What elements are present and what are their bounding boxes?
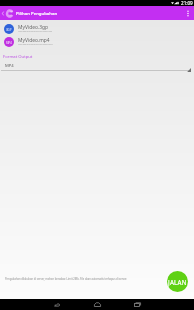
button[interactable]: Navigate up: [0, 6, 6, 20]
button[interactable]: Home: [90, 299, 104, 310]
staticText: 3GP: [6, 28, 12, 32]
staticText: MyVideo.3gp: [18, 24, 48, 31]
staticText: JALAN: [168, 278, 187, 286]
button[interactable]: JALAN: [167, 271, 188, 292]
button[interactable]: MP4: [1, 63, 191, 73]
button[interactable]: 3GP: [0, 22, 194, 35]
staticText: MyVideo.mp4: [18, 37, 50, 44]
staticText: Pengubahan dilakukan di server, mohon be…: [5, 277, 127, 281]
button[interactable]: Back: [50, 299, 64, 310]
staticText: Pilihan Pengubahan: [16, 10, 58, 16]
button[interactable]: More options: [181, 6, 194, 20]
button[interactable]: Recent apps: [130, 299, 144, 310]
staticText: MP4: [5, 63, 14, 69]
button[interactable]: MP4: [0, 35, 194, 48]
staticText: MP4: [6, 41, 12, 45]
staticText: /storage/emulated/0/MyVideo.3gp: [18, 30, 53, 33]
staticText: /storage/emulated/0/MyVideo.mp4: [18, 43, 53, 46]
staticText: Format Output: [3, 54, 33, 60]
staticText: 21:09: [181, 0, 193, 6]
